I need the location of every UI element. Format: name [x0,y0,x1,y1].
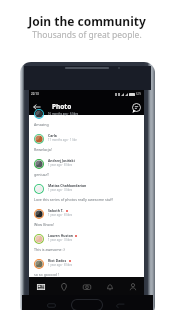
staticText: 16 months ago · 6 likes [48,112,79,116]
button[interactable]: Saboth T. [29,207,144,232]
staticText: Amazing [34,122,49,127]
button[interactable]: Places [52,277,75,296]
staticText: Carla [48,133,57,138]
staticText: 11 months ago · 1 like [48,138,77,142]
staticText: Andrzej Jasiński [48,158,75,163]
staticText: 62% [136,92,142,96]
staticText: 1 year ago · 8 likes [48,213,73,217]
button[interactable]: Messages [130,101,142,113]
staticText: Join the community [0,13,174,29]
staticText: Thousands of great people. [0,29,174,41]
button[interactable]: Carla [29,132,144,157]
button[interactable]: Back [31,101,43,113]
button[interactable]: Camera [75,277,98,296]
staticText: so so gooood ! [34,272,59,277]
staticText: Lauren Huston [48,233,73,238]
staticText: 1 year ago · 3 likes [48,188,73,192]
button[interactable]: Lauren Huston [29,232,144,257]
staticText: This is awesome :) [34,247,65,252]
button[interactable]: Matias Chahbandarian [29,182,144,207]
button[interactable]: Notifications [98,277,121,296]
staticText: 1 year ago · 3 likes [48,238,73,242]
staticText: Saboth T. [48,208,64,213]
staticText: 1 year ago · 8 likes [48,263,73,267]
button[interactable]: Feed [29,277,52,296]
staticText: Wow Bravo! [34,222,54,227]
staticText: Riot Dados [48,258,67,263]
staticText: 22:13 [31,92,39,96]
staticText: Rewelacja! [34,147,52,152]
button[interactable]: Profile [121,277,144,296]
staticText: 1 year ago · 8 likes [48,163,73,167]
button[interactable]: Andrzej Jasiński [29,157,144,182]
staticText: Photo [52,102,72,111]
button[interactable]: Riot Dados [29,257,144,277]
button[interactable]: 16 months ago · 6 likes [29,115,144,132]
staticText: Love this series of photos really awesom… [34,197,113,202]
staticText: Matias Chahbandarian [48,183,87,188]
staticText: geniusz!! [34,172,49,177]
